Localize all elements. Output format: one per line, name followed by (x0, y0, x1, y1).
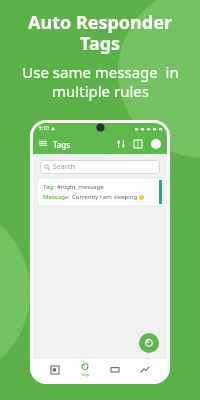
button[interactable]: Tags (73, 359, 97, 381)
staticText: Search (53, 162, 76, 172)
staticText: Tags (81, 372, 90, 377)
button[interactable]: Menu (39, 140, 47, 148)
button[interactable]: Add tag (139, 333, 159, 353)
button[interactable]: Sort (117, 140, 125, 148)
button[interactable]: Grid view (134, 140, 142, 148)
staticText: Tags (53, 139, 71, 150)
button[interactable]: Tag: (38, 179, 162, 205)
button[interactable] (103, 359, 127, 381)
staticText: Currently i am sleeping (72, 193, 138, 201)
button[interactable] (43, 359, 67, 381)
button[interactable] (133, 359, 157, 381)
button[interactable]: Search (40, 160, 160, 174)
staticText: Tag: (43, 183, 57, 191)
button[interactable]: Account (151, 139, 161, 149)
staticText: 5:10 (39, 125, 49, 132)
staticText: Auto Responder Tags (28, 10, 172, 56)
staticText: Message: (43, 193, 72, 201)
staticText: Use same message in multiple rules (22, 62, 179, 101)
staticText: #night_message (57, 183, 104, 191)
